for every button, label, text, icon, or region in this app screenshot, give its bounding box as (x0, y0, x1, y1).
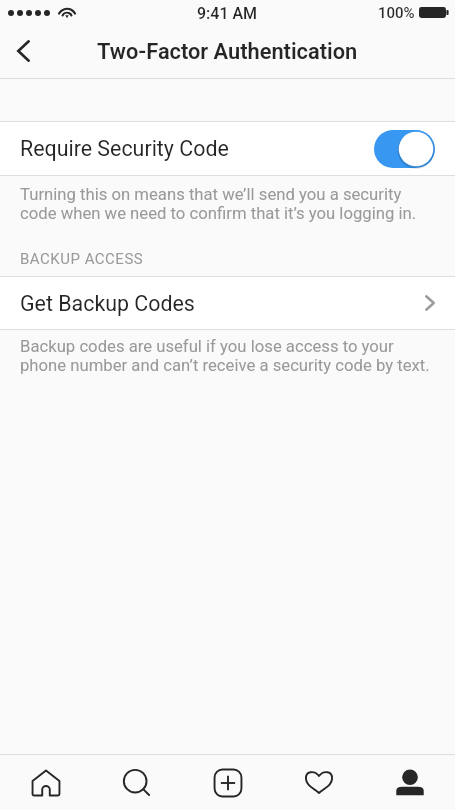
button[interactable]: New post (182, 755, 273, 810)
button[interactable]: Home (0, 755, 91, 810)
staticText: Backup codes are useful if you lose acce… (20, 337, 435, 375)
staticText: 100% (378, 4, 415, 22)
staticText: Get Backup Codes (20, 291, 195, 316)
staticText: Require Security Code (20, 136, 229, 161)
staticText: 9:41 AM (197, 4, 258, 23)
button[interactable]: Require Security Code (374, 130, 435, 168)
button[interactable]: Back (0, 28, 46, 74)
button[interactable]: Require Security Code (0, 122, 455, 175)
button[interactable]: Search (91, 755, 182, 810)
staticText: Turning this on means that we’ll send yo… (20, 185, 435, 223)
button[interactable]: Activity (273, 755, 364, 810)
button[interactable]: Get Backup Codes (0, 277, 455, 329)
staticText: Two-Factor Authentication (97, 39, 358, 65)
button[interactable]: Profile (364, 755, 455, 810)
staticText: BACKUP ACCESS (20, 250, 144, 268)
